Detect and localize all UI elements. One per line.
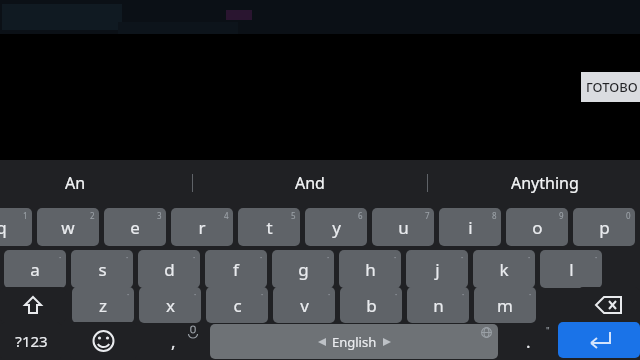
- staticText: ·: [261, 289, 264, 300]
- staticText: n: [433, 294, 444, 317]
- staticText: p: [599, 216, 610, 239]
- staticText: ·: [328, 289, 331, 300]
- button[interactable]: v: [273, 287, 335, 323]
- staticText: f: [233, 258, 239, 281]
- button[interactable]: s: [71, 250, 133, 288]
- button[interactable]: g: [272, 250, 334, 288]
- button[interactable]: y: [305, 208, 367, 246]
- button[interactable]: Backspace: [578, 287, 640, 323]
- staticText: r: [198, 216, 206, 239]
- button[interactable]: q: [0, 208, 32, 246]
- button[interactable]: .: [500, 322, 556, 360]
- button[interactable]: ГОТОВО: [581, 72, 640, 102]
- staticText: k: [499, 258, 509, 281]
- button[interactable]: r: [171, 208, 233, 246]
- button[interactable]: k: [473, 250, 535, 288]
- button[interactable]: t: [238, 208, 300, 246]
- staticText: And: [295, 172, 325, 194]
- staticText: 0: [626, 210, 631, 221]
- staticText: 5: [291, 210, 296, 221]
- button[interactable]: b: [340, 287, 402, 323]
- staticText: ·: [193, 252, 196, 263]
- staticText: q: [0, 216, 7, 239]
- staticText: j: [435, 258, 440, 281]
- staticText: m: [497, 294, 513, 317]
- button[interactable]: ?123: [0, 322, 62, 360]
- staticText: g: [298, 258, 309, 281]
- staticText: ·: [127, 289, 130, 300]
- button[interactable]: c: [206, 287, 268, 323]
- staticText: ?123: [15, 331, 48, 351]
- button[interactable]: Enter: [558, 322, 640, 358]
- staticText: a: [30, 258, 40, 281]
- staticText: 3: [157, 210, 162, 221]
- staticText: h: [365, 258, 376, 281]
- button[interactable]: l: [540, 250, 602, 288]
- staticText: t: [266, 216, 273, 239]
- staticText: ·: [327, 252, 330, 263]
- staticText: b: [366, 294, 377, 317]
- staticText: e: [130, 216, 140, 239]
- button[interactable]: ,: [140, 322, 206, 360]
- staticText: s: [98, 258, 107, 281]
- staticText: i: [468, 216, 473, 239]
- staticText: ·: [59, 252, 62, 263]
- staticText: ": [546, 324, 550, 336]
- staticText: 2: [90, 210, 95, 221]
- button[interactable]: And: [235, 160, 385, 205]
- button[interactable]: z: [72, 287, 134, 323]
- staticText: ·: [462, 289, 465, 300]
- staticText: ,: [171, 330, 176, 353]
- button[interactable]: u: [372, 208, 434, 246]
- staticText: z: [99, 294, 107, 317]
- button[interactable]: m: [474, 287, 536, 323]
- staticText: 9: [559, 210, 564, 221]
- staticText: Anything: [511, 172, 579, 194]
- staticText: ·: [394, 252, 397, 263]
- button[interactable]: Emoji: [70, 322, 137, 360]
- staticText: English: [332, 333, 377, 351]
- button[interactable]: a: [4, 250, 66, 288]
- staticText: ·: [529, 289, 532, 300]
- staticText: c: [233, 294, 242, 317]
- staticText: 6: [358, 210, 363, 221]
- staticText: ·: [260, 252, 263, 263]
- staticText: 1: [23, 210, 28, 221]
- staticText: u: [398, 216, 409, 239]
- button[interactable]: English: [210, 324, 498, 359]
- button[interactable]: f: [205, 250, 267, 288]
- button[interactable]: i: [439, 208, 501, 246]
- button[interactable]: h: [339, 250, 401, 288]
- staticText: ·: [528, 252, 531, 263]
- staticText: ·: [194, 289, 197, 300]
- button[interactable]: j: [406, 250, 468, 288]
- staticText: d: [164, 258, 175, 281]
- button[interactable]: Shift: [0, 287, 66, 323]
- staticText: ГОТОВО: [586, 78, 638, 96]
- staticText: .: [526, 330, 531, 353]
- staticText: x: [166, 294, 175, 317]
- button[interactable]: An: [0, 160, 150, 205]
- staticText: ·: [126, 252, 129, 263]
- staticText: An: [65, 172, 86, 194]
- staticText: 8: [492, 210, 497, 221]
- staticText: ·: [595, 252, 598, 263]
- staticText: 7: [425, 210, 430, 221]
- staticText: w: [61, 216, 75, 239]
- button[interactable]: Anything: [470, 160, 620, 205]
- button[interactable]: o: [506, 208, 568, 246]
- button[interactable]: w: [37, 208, 99, 246]
- staticText: o: [532, 216, 543, 239]
- staticText: v: [300, 294, 309, 317]
- staticText: ·: [461, 252, 464, 263]
- button[interactable]: e: [104, 208, 166, 246]
- staticText: ·: [395, 289, 398, 300]
- button[interactable]: p: [573, 208, 635, 246]
- staticText: y: [332, 216, 341, 239]
- staticText: 4: [224, 210, 229, 221]
- staticText: l: [569, 258, 574, 281]
- button[interactable]: n: [407, 287, 469, 323]
- button[interactable]: x: [139, 287, 201, 323]
- button[interactable]: d: [138, 250, 200, 288]
